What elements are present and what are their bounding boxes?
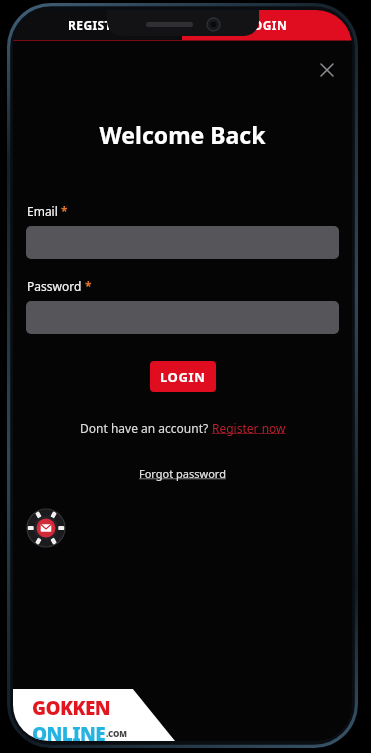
staticText: LOGIN xyxy=(246,17,288,33)
button[interactable]: Close xyxy=(314,57,340,83)
staticText: * xyxy=(82,278,92,294)
button[interactable]: REGISTER xyxy=(13,10,182,40)
staticText: GOKKEN xyxy=(32,695,110,721)
staticText: Dont have an account? xyxy=(80,420,212,436)
staticText: ONLINE xyxy=(32,721,106,741)
staticText: Register now xyxy=(212,420,286,436)
button[interactable] xyxy=(26,301,339,334)
button[interactable]: LOGIN xyxy=(182,10,352,40)
button[interactable]: Register now xyxy=(212,420,286,436)
staticText: .COM xyxy=(106,728,128,739)
staticText: Password xyxy=(27,278,82,294)
button[interactable] xyxy=(26,226,339,259)
button[interactable]: Forgot password xyxy=(139,466,226,481)
staticText: Email xyxy=(27,203,58,219)
staticText: Welcome Back xyxy=(13,119,352,150)
staticText: LOGIN xyxy=(160,368,206,386)
button[interactable]: LOGIN xyxy=(150,361,216,392)
staticText: * xyxy=(58,203,68,219)
button[interactable]: Contact us xyxy=(27,509,65,547)
staticText: Forgot password xyxy=(139,466,226,481)
staticText: REGISTER xyxy=(68,17,128,33)
